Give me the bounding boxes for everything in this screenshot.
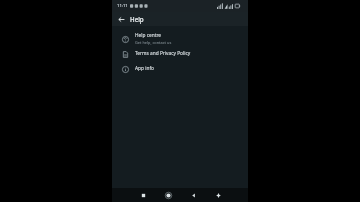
button[interactable]: Rotate bbox=[212, 189, 224, 201]
button[interactable]: Terms and Privacy Policy bbox=[112, 46, 248, 61]
staticText: Terms and Privacy Policy bbox=[135, 50, 191, 57]
staticText: Help centre bbox=[135, 32, 161, 39]
staticText: App info bbox=[135, 65, 154, 72]
button[interactable]: Back bbox=[116, 14, 127, 25]
button[interactable]: Back bbox=[187, 189, 199, 201]
staticText: Get help, contact us bbox=[135, 40, 172, 45]
button[interactable]: Home bbox=[162, 189, 174, 201]
button[interactable]: App info bbox=[112, 61, 248, 76]
button[interactable]: Recents bbox=[137, 189, 149, 201]
staticText: 11:11 bbox=[117, 3, 128, 9]
button[interactable]: Help centre bbox=[112, 31, 248, 46]
staticText: Help bbox=[130, 15, 144, 23]
